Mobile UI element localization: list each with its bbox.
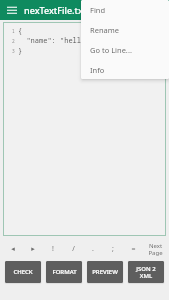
button[interactable]: PREVIEW <box>87 261 123 283</box>
staticText: CHECK <box>13 268 33 276</box>
staticText: 1 <box>12 28 15 34</box>
staticText: 2 <box>12 38 15 44</box>
staticText: Go to Line... <box>90 45 132 55</box>
staticText: { <box>18 26 23 36</box>
staticText: ; <box>112 244 114 254</box>
button[interactable]: Insert = <box>123 239 143 259</box>
button[interactable]: Insert ▸ <box>23 239 43 259</box>
button[interactable]: JSON 2 XML <box>128 261 164 283</box>
button[interactable]: Insert / <box>63 239 83 259</box>
staticText: ! <box>52 244 54 254</box>
staticText: Rename <box>90 25 119 35</box>
button[interactable]: Insert ◂ <box>2 239 23 259</box>
button[interactable]: Open navigation menu <box>4 2 20 18</box>
staticText: } <box>18 46 23 56</box>
button[interactable]: CHECK <box>5 261 41 283</box>
button[interactable]: Find <box>81 0 169 20</box>
button[interactable]: Insert ! <box>43 239 63 259</box>
staticText: 3 <box>12 48 15 54</box>
staticText: . <box>92 244 94 254</box>
button[interactable]: Go to Line... <box>81 40 169 60</box>
staticText: Next Page <box>148 242 163 257</box>
button[interactable]: Rename <box>81 20 169 40</box>
staticText: "name": "hello world" <box>18 36 115 46</box>
staticText: FORMAT <box>52 268 77 276</box>
button[interactable]: Next Page <box>143 239 167 259</box>
staticText: Info <box>90 65 105 75</box>
staticText: PREVIEW <box>92 268 118 276</box>
staticText: Find <box>90 5 106 15</box>
button[interactable]: FORMAT <box>46 261 82 283</box>
staticText: nexTextFile.txt <box>24 4 87 16</box>
button[interactable]: Insert ; <box>103 239 123 259</box>
staticText: ▸ <box>31 245 35 253</box>
staticText: = <box>131 244 136 254</box>
button[interactable]: Info <box>81 60 169 79</box>
staticText: JSON 2 XML <box>136 265 156 280</box>
staticText: ◂ <box>11 245 15 253</box>
staticText: / <box>72 244 75 254</box>
